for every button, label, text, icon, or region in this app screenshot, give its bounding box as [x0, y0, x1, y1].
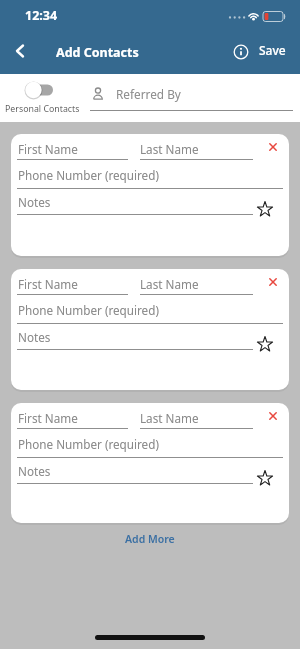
staticText: Referred By — [116, 86, 181, 102]
button[interactable] — [264, 407, 282, 425]
button[interactable] — [233, 44, 249, 60]
staticText: Personal Contacts — [5, 103, 80, 115]
button[interactable] — [264, 138, 282, 156]
button[interactable] — [254, 467, 276, 489]
staticText: Phone Number (required) — [18, 167, 159, 183]
button[interactable]: Add More — [114, 528, 186, 550]
staticText: First Name — [18, 141, 78, 157]
staticText: Last Name — [140, 141, 199, 157]
staticText: 12:34 — [25, 7, 58, 24]
button[interactable] — [254, 333, 276, 355]
staticText: First Name — [18, 276, 78, 292]
staticText: Add More — [125, 532, 175, 546]
button[interactable] — [22, 79, 56, 101]
staticText: Phone Number (required) — [18, 436, 159, 452]
staticText: Notes — [18, 463, 51, 479]
staticText: Notes — [18, 329, 51, 345]
staticText: Last Name — [140, 410, 199, 426]
button[interactable] — [254, 198, 276, 220]
staticText: Last Name — [140, 276, 199, 292]
staticText: Phone Number (required) — [18, 302, 159, 318]
button[interactable]: Save — [259, 42, 286, 58]
button[interactable] — [6, 38, 32, 64]
button[interactable] — [264, 273, 282, 291]
staticText: Notes — [18, 194, 51, 210]
staticText: Add Contacts — [56, 44, 139, 61]
staticText: First Name — [18, 410, 78, 426]
